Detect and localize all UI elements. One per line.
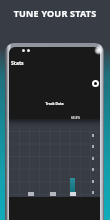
button[interactable]: Profile xyxy=(92,80,99,87)
staticText: Track Data xyxy=(9,101,100,106)
staticText: TUNE YOUR STATS xyxy=(0,7,110,19)
staticText: 68.8% xyxy=(71,116,81,120)
staticText: Stats xyxy=(11,60,24,67)
